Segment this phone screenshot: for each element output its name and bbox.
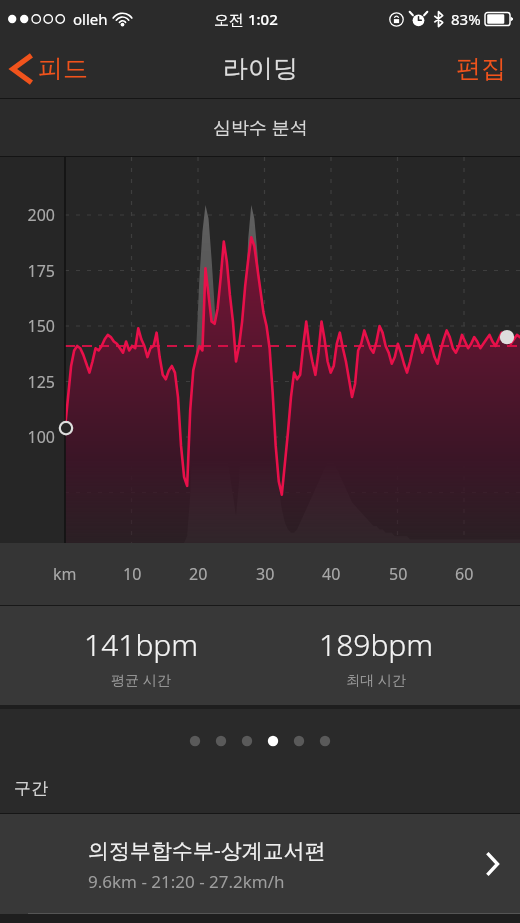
staticText: 9.6km - 21:20 - 27.2km/h (88, 870, 285, 893)
staticText: 피드 (38, 53, 88, 84)
other: Open segment details (486, 852, 500, 876)
staticText: 50 (389, 563, 408, 585)
staticText: 150 (0, 315, 55, 337)
staticText: 60 (455, 563, 474, 585)
staticText: 100 (0, 426, 55, 448)
staticText: 심박수 분석 (213, 115, 308, 140)
staticText: 30 (256, 563, 275, 585)
staticText: 141bpm (84, 624, 199, 665)
staticText: 40 (322, 563, 341, 585)
staticText: 오전 1:02 (214, 9, 278, 29)
staticText: 175 (0, 260, 55, 282)
staticText: 편집 (456, 53, 506, 84)
staticText: 라이딩 (223, 53, 298, 84)
button[interactable]: 피드 (0, 47, 102, 90)
button[interactable]: 의정부합수부-상계교서편 (0, 814, 520, 914)
staticText: 10 (123, 563, 142, 585)
staticText: 구간 (14, 778, 48, 799)
staticText: 189bpm (319, 624, 434, 665)
staticText: km (53, 563, 77, 585)
staticText: 125 (0, 371, 55, 393)
staticText: 200 (0, 204, 55, 226)
staticText: 83% (451, 9, 481, 29)
button[interactable]: 편집 (442, 47, 520, 90)
staticText: 최대 시간 (346, 670, 406, 689)
staticText: olleh (73, 9, 108, 29)
staticText: 평균 시간 (111, 670, 171, 689)
staticText: 20 (189, 563, 208, 585)
staticText: 의정부합수부-상계교서편 (88, 836, 326, 865)
